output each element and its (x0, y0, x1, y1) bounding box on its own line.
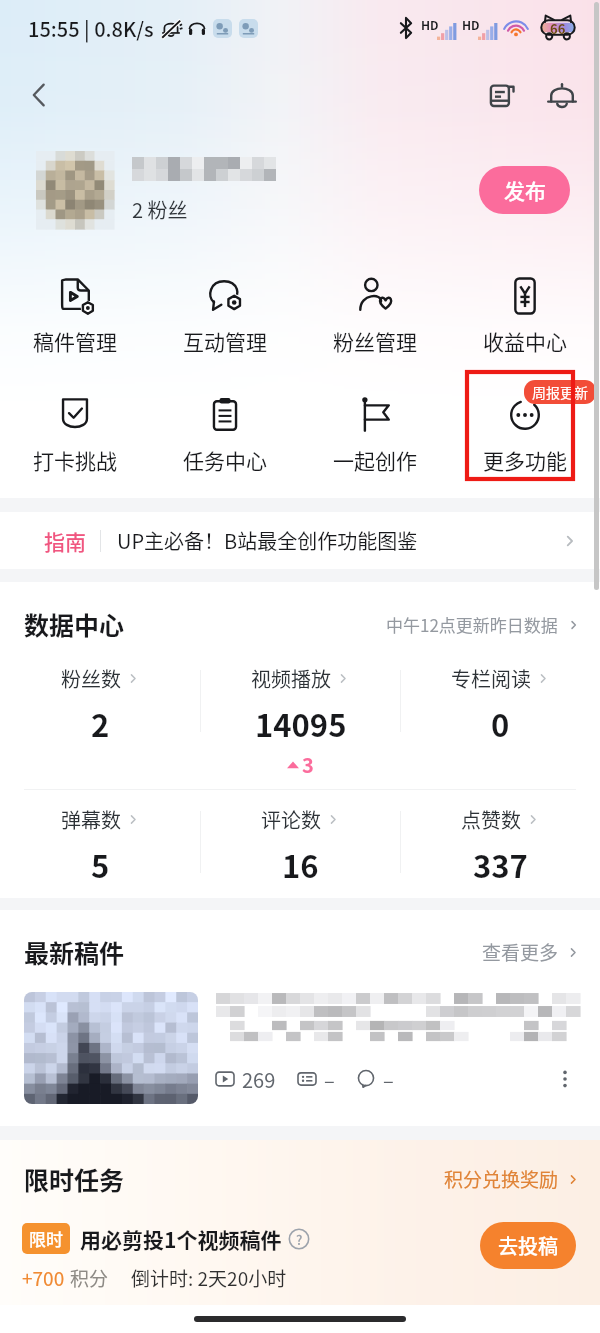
button[interactable]: 点赞数 (401, 805, 600, 887)
staticText: – (383, 1065, 394, 1094)
staticText: 更多功能 (483, 445, 567, 475)
button[interactable]: 专栏阅读 (401, 664, 600, 746)
button[interactable]: 稿件管理 (0, 273, 150, 356)
button[interactable]: 弹幕数 (0, 805, 200, 887)
staticText: 数据中心 (24, 606, 125, 642)
button[interactable]: 视频播放 (201, 664, 400, 779)
staticText: +700 (22, 1264, 65, 1292)
button[interactable]: 任务中心 (150, 392, 300, 475)
button[interactable]: 互动管理 (150, 273, 300, 356)
button[interactable]: 积分兑换奖励 (444, 1165, 580, 1193)
staticText: 稿件管理 (33, 326, 117, 356)
button[interactable]: 指南 (0, 512, 600, 569)
staticText: 3 (302, 750, 314, 779)
staticText: – (324, 1065, 335, 1094)
button[interactable]: More options (550, 1064, 580, 1094)
staticText: 269 (242, 1065, 276, 1094)
staticText: 点赞数 (461, 805, 521, 834)
staticText: 0 (491, 701, 510, 746)
button[interactable]: Help (288, 1228, 310, 1250)
staticText: HD (462, 16, 480, 33)
staticText: 66 (550, 19, 566, 38)
staticText: 最新稿件 (24, 934, 125, 970)
button[interactable]: 收益中心 (450, 273, 600, 356)
staticText: 视频播放 (251, 664, 331, 693)
staticText: 弹幕数 (61, 805, 121, 834)
staticText: 用必剪投1个视频稿件 (80, 1224, 282, 1254)
button[interactable]: 查看更多 (482, 938, 580, 966)
staticText: 积分 (70, 1264, 109, 1292)
staticText: 发布 (504, 175, 546, 205)
staticText: 15:55 | 0.8K/s (28, 14, 154, 43)
staticText: 粉丝数 (61, 664, 121, 693)
staticText: 去投稿 (498, 1231, 558, 1260)
staticText: 粉丝管理 (333, 326, 417, 356)
staticText: 互动管理 (183, 326, 267, 356)
staticText: 任务中心 (183, 445, 267, 475)
button[interactable]: Video thumbnail (24, 992, 198, 1104)
button[interactable]: Creator manual (480, 73, 524, 117)
button[interactable]: 中午12点更新昨日数据 (386, 612, 580, 637)
staticText: UP主必备！B站最全创作功能图鉴 (117, 526, 418, 555)
staticText: 一起创作 (333, 445, 417, 475)
staticText: 积分兑换奖励 (444, 1165, 559, 1193)
staticText: 2 粉丝 (132, 195, 188, 224)
staticText: 337 (473, 842, 528, 887)
staticText: 打卡挑战 (33, 445, 117, 475)
staticText: 限时任务 (24, 1161, 125, 1197)
button[interactable]: 打卡挑战 (0, 392, 150, 475)
staticText: 14095 (255, 701, 347, 746)
button[interactable]: 更多功能 (450, 392, 600, 475)
staticText: HD (421, 16, 439, 33)
button[interactable]: 粉丝管理 (300, 273, 450, 356)
staticText: 16 (282, 842, 319, 887)
staticText: 中午12点更新昨日数据 (386, 612, 558, 637)
staticText: 2 (91, 701, 110, 746)
staticText: 专栏阅读 (451, 664, 531, 693)
staticText: 指南 (44, 526, 86, 556)
button[interactable]: 发布 (479, 166, 570, 214)
staticText: 收益中心 (483, 326, 567, 356)
staticText: 评论数 (261, 805, 321, 834)
button[interactable]: 粉丝数 (0, 664, 200, 746)
staticText: 5 (91, 842, 110, 887)
button[interactable]: 一起创作 (300, 392, 450, 475)
staticText: 限时 (29, 1226, 63, 1251)
button[interactable]: Avatar (36, 151, 114, 229)
button[interactable]: 评论数 (201, 805, 400, 887)
staticText: 倒计时: 2天20小时 (131, 1264, 287, 1292)
staticText: 查看更多 (482, 938, 559, 966)
button[interactable]: Back (17, 73, 61, 117)
button[interactable]: 去投稿 (480, 1222, 576, 1269)
staticText: 周报更新 (532, 382, 588, 402)
staticText: ? (296, 1230, 303, 1249)
button[interactable]: Notifications (540, 73, 584, 117)
